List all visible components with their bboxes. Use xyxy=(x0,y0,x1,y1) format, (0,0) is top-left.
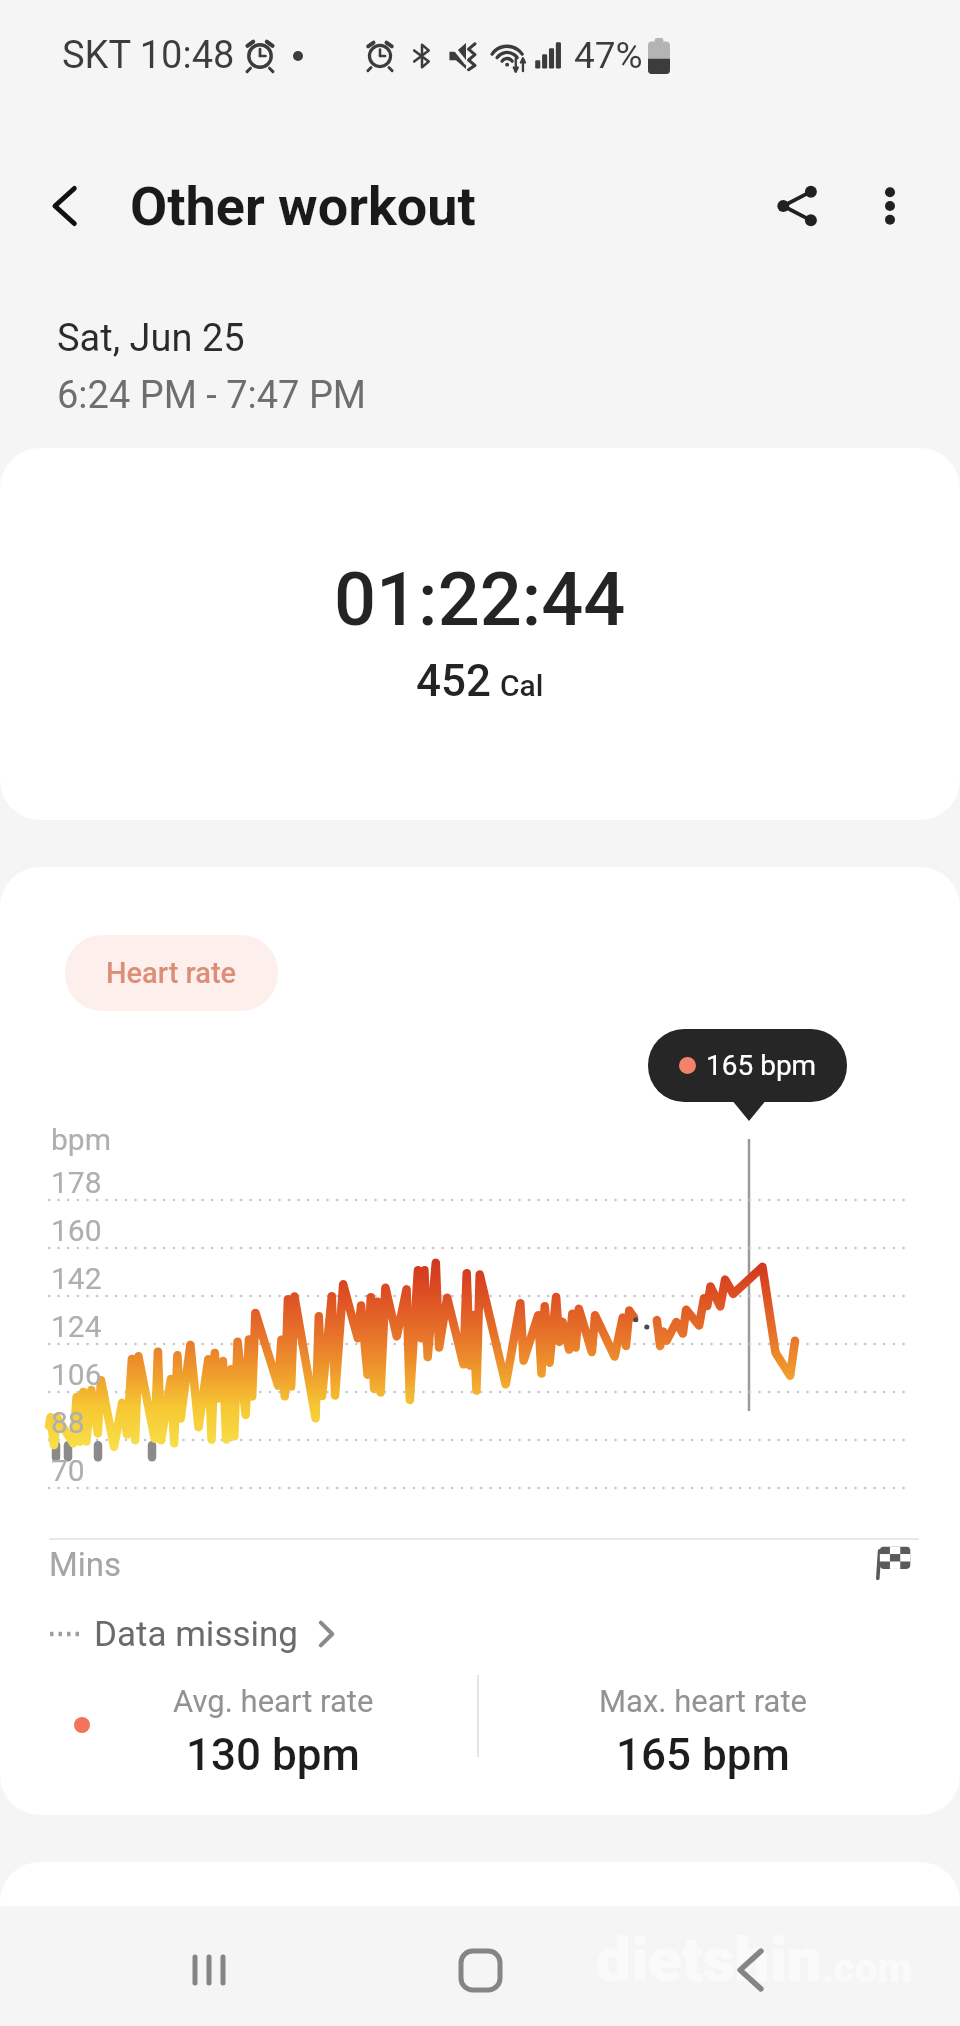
staticText: 130 bpm xyxy=(186,1729,360,1781)
button[interactable]: Home xyxy=(420,1914,540,2026)
staticText: Data missing xyxy=(94,1614,299,1655)
staticText: 142 xyxy=(51,1261,102,1296)
button[interactable]: Data missing xyxy=(50,1603,339,1665)
button[interactable]: Heart rate xyxy=(65,935,278,1011)
button[interactable]: Back xyxy=(690,1914,810,2026)
staticText: Heart rate xyxy=(106,956,237,990)
button[interactable]: Heart rate xyxy=(0,867,960,1815)
button[interactable]: Share xyxy=(758,166,838,246)
staticText: dietshin xyxy=(596,1923,822,1996)
button[interactable]: 01:22:44 xyxy=(0,448,960,820)
staticText: Max. heart rate xyxy=(599,1683,807,1719)
staticText: Mins xyxy=(49,1545,122,1584)
button[interactable]: Finish line xyxy=(858,1525,930,1597)
button[interactable]: Back xyxy=(30,170,102,242)
staticText: 178 xyxy=(51,1165,102,1200)
button[interactable]: More options xyxy=(850,166,930,246)
staticText: 88 xyxy=(51,1405,85,1440)
staticText: 165 bpm xyxy=(706,1049,817,1082)
button[interactable]: Recents xyxy=(150,1914,270,2026)
staticText: 01:22:44 xyxy=(334,556,626,643)
staticText: 452 xyxy=(416,655,492,707)
staticText: 70 xyxy=(51,1453,85,1488)
staticText: Other workout xyxy=(130,175,476,238)
staticText: 106 xyxy=(51,1357,102,1392)
staticText: 6:24 PM - 7:47 PM xyxy=(57,373,367,418)
staticText: 165 bpm xyxy=(616,1729,790,1781)
staticText: Cal xyxy=(500,668,544,703)
staticText: 124 xyxy=(51,1309,102,1344)
staticText: 47% xyxy=(574,34,643,77)
staticText: SKT 10:48 xyxy=(62,33,235,78)
staticText: Avg. heart rate xyxy=(173,1683,374,1719)
staticText: bpm xyxy=(51,1122,111,1157)
staticText: 160 xyxy=(51,1213,102,1248)
staticText: Sat, Jun 25 xyxy=(57,316,245,361)
